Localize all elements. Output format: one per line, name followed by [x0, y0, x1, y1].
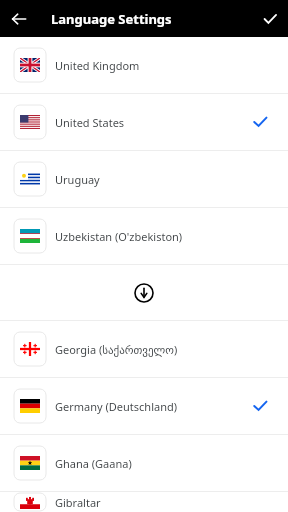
button[interactable]: Confirm [251, 0, 288, 37]
button[interactable]: Uzbekistan (O'zbekiston) [0, 208, 288, 264]
button[interactable]: United States [0, 94, 288, 150]
button[interactable]: Ghana (Gaana) [0, 435, 288, 491]
staticText: Uzbekistan (O'zbekiston) [55, 229, 275, 244]
button[interactable]: Georgia (საქართველო) [0, 321, 288, 377]
staticText: Language Settings [51, 10, 172, 28]
button[interactable]: Gibraltar [0, 492, 288, 512]
button[interactable]: Germany (Deutschland) [0, 378, 288, 434]
staticText: United States [55, 115, 251, 130]
staticText: Georgia (საქართველო) [55, 342, 275, 357]
button[interactable]: Uruguay [0, 151, 288, 207]
staticText: United Kingdom [55, 58, 275, 73]
button[interactable]: Back [0, 0, 37, 37]
staticText: Germany (Deutschland) [55, 399, 251, 414]
staticText: Ghana (Gaana) [55, 456, 275, 471]
staticText: Gibraltar [55, 495, 275, 510]
button[interactable]: Show more languages [0, 265, 288, 320]
staticText: Uruguay [55, 172, 275, 187]
button[interactable]: United Kingdom [0, 37, 288, 93]
